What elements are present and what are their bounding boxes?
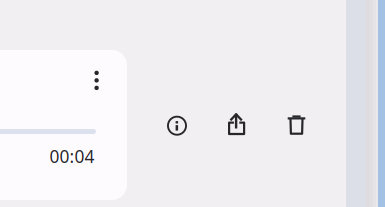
button[interactable]: Info — [167, 116, 187, 136]
staticText: 00:04 — [49, 145, 94, 168]
button[interactable]: Delete — [287, 114, 305, 135]
button[interactable]: More options — [89, 64, 105, 96]
button[interactable]: Share — [228, 111, 246, 135]
